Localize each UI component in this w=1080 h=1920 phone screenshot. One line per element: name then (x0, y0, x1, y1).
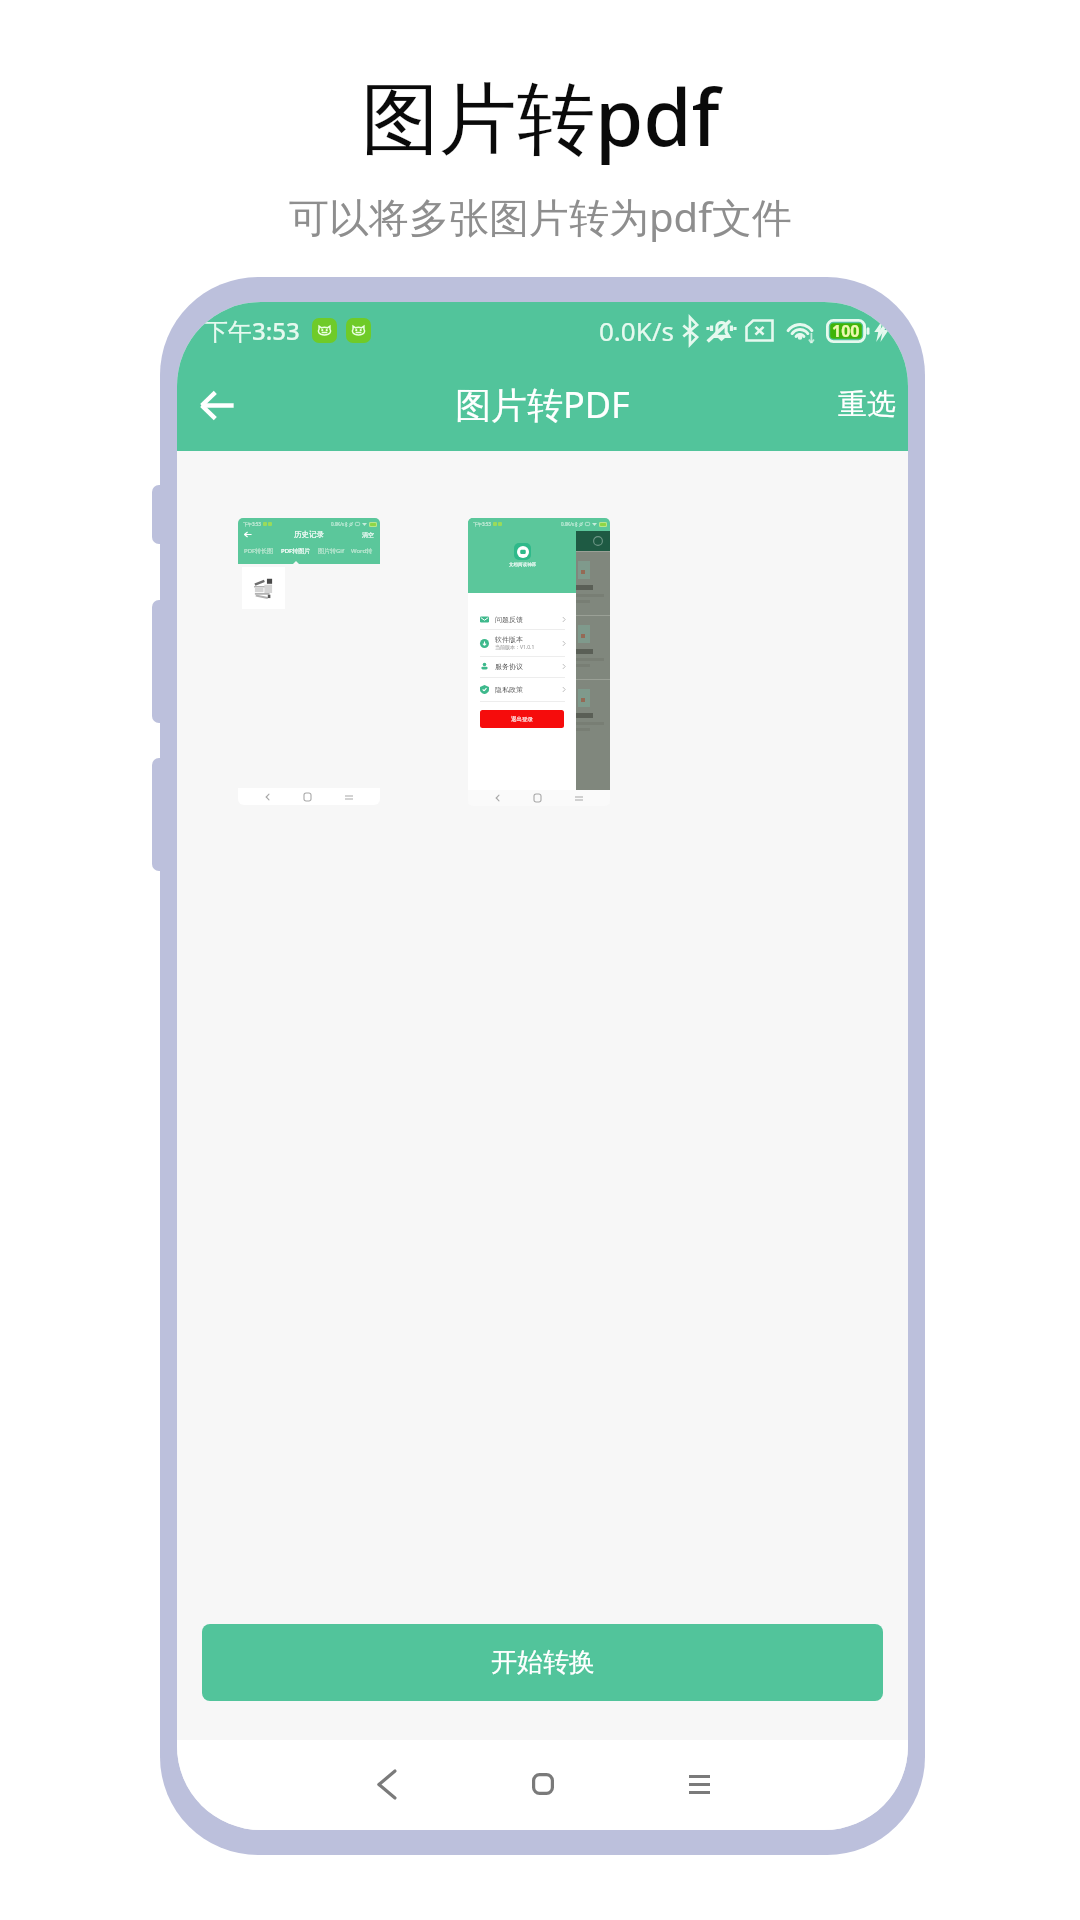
button[interactable]: Back (355, 1752, 419, 1816)
staticText: 图片转Gif (318, 547, 344, 555)
staticText: 重选 (838, 386, 896, 423)
staticText: 0.0K/s (561, 521, 574, 527)
staticText: 问题反馈 (495, 615, 523, 624)
button[interactable]: 软件版本 (480, 635, 566, 651)
staticText: 100 (832, 320, 860, 342)
staticText: 下午3:53 (204, 314, 300, 347)
staticText: PDF转图片 (281, 547, 311, 555)
staticText: 当前版本：V1.0.1 (495, 644, 535, 651)
staticText: 下午3:53 (243, 521, 261, 527)
button[interactable]: 服务协议 (480, 660, 566, 673)
staticText: 开始转换 (491, 1646, 595, 1679)
staticText: 清空 (362, 531, 374, 539)
staticText: 文档阅读神器 (509, 562, 536, 568)
staticText: 可以将多张图片转为pdf文件 (289, 189, 792, 244)
staticText: 0.0K/s (331, 521, 344, 527)
staticText: 服务协议 (495, 662, 523, 671)
button[interactable]: 开始转换 (202, 1624, 883, 1701)
button[interactable]: 隐私政策 (480, 683, 566, 696)
staticText: 图片转PDF (455, 380, 630, 429)
button[interactable]: 问题反馈 (480, 613, 566, 626)
staticText: 历史记录 (294, 530, 324, 539)
staticText: Word转 (351, 547, 373, 555)
button[interactable]: Selected image 2 (468, 518, 610, 806)
staticText: 退出登录 (511, 716, 533, 723)
staticText: 软件版本 (495, 635, 523, 644)
button[interactable]: 重选 (814, 368, 908, 441)
button[interactable]: Back (181, 369, 253, 441)
button[interactable]: Selected image 1 (238, 518, 380, 805)
button[interactable]: Home (511, 1752, 575, 1816)
staticText: 0.0K/s (599, 313, 674, 348)
staticText: PDF转长图 (244, 547, 274, 555)
staticText: 隐私政策 (495, 685, 523, 694)
button[interactable]: Menu (667, 1752, 731, 1816)
staticText: 图片转pdf (361, 63, 720, 170)
staticText: 下午3:53 (473, 521, 491, 527)
